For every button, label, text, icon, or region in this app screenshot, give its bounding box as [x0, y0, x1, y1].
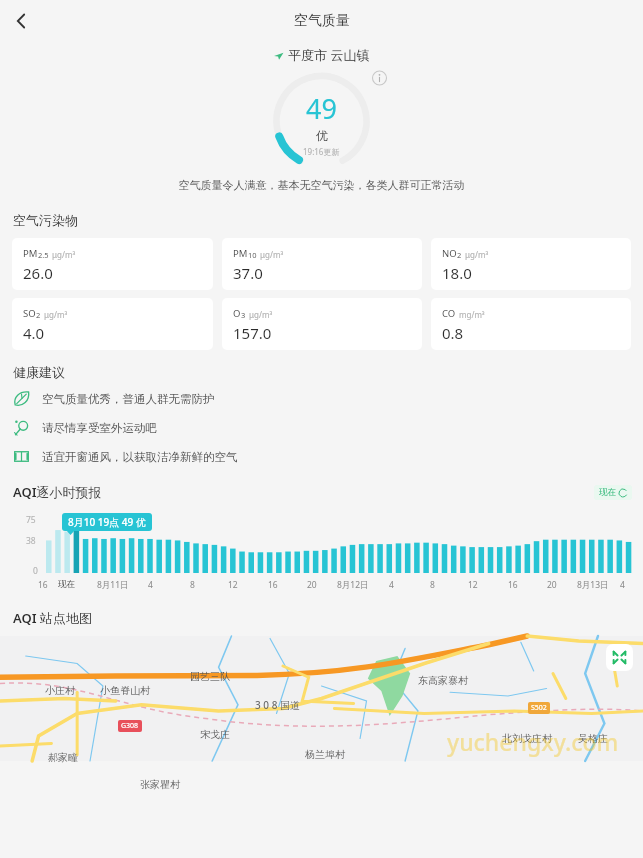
staticText: AQI 站点地图	[13, 609, 92, 627]
staticText: 请尽情享受室外运动吧	[42, 421, 157, 435]
button[interactable]: Back	[4, 4, 38, 38]
staticText: S502	[531, 703, 547, 713]
staticText: 园艺三队	[190, 670, 230, 683]
staticText: 3	[241, 310, 246, 320]
staticText: NO	[442, 247, 457, 260]
staticText: 2	[36, 310, 41, 320]
staticText: 49	[306, 90, 337, 127]
staticText: 20	[547, 579, 557, 591]
staticText: 2.5	[38, 250, 49, 260]
button[interactable]: PM	[12, 238, 213, 290]
staticText: AQI逐小时预报	[13, 483, 102, 501]
staticText: 157.0	[233, 323, 272, 343]
staticText: 张家瞿村	[140, 778, 180, 791]
staticText: 现在	[599, 487, 616, 498]
staticText: 平度市 云山镇	[288, 46, 370, 64]
staticText: 4	[620, 579, 625, 591]
staticText: 18.0	[442, 263, 472, 283]
staticText: 8月10 19点 49 优	[68, 515, 146, 529]
staticText: μg/m³	[52, 249, 76, 260]
button[interactable]: PM	[222, 238, 422, 290]
staticText: PM	[233, 247, 248, 260]
staticText: 空气污染物	[13, 212, 78, 228]
staticText: PM	[23, 247, 38, 260]
staticText: G308	[121, 721, 139, 731]
staticText: 东高家寨村	[418, 674, 468, 687]
staticText: 8月11日	[97, 579, 129, 591]
staticText: 优	[316, 128, 328, 143]
button[interactable]: CO	[431, 298, 631, 350]
staticText: 吴格庄	[578, 732, 608, 745]
staticText: 4	[148, 579, 153, 591]
button[interactable]: SO	[12, 298, 213, 350]
staticText: 8月13日	[577, 579, 609, 591]
staticText: 空气质量令人满意，基本无空气污染，各类人群可正常活动	[0, 178, 643, 192]
staticText: 小庄村	[45, 684, 75, 697]
staticText: O	[233, 307, 241, 320]
staticText: 杨兰埠村	[305, 748, 345, 761]
button[interactable]: 现在	[594, 485, 632, 500]
button[interactable]: 平度市 云山镇	[0, 42, 643, 68]
staticText: 小鱼脊山村	[100, 684, 150, 697]
staticText: 38	[26, 535, 36, 547]
staticText: μg/m³	[260, 249, 284, 260]
staticText: 12	[468, 579, 478, 591]
staticText: 12	[228, 579, 238, 591]
staticText: 8	[430, 579, 435, 591]
staticText: 空气质量	[294, 12, 350, 30]
staticText: 北刘戈庄村	[502, 732, 552, 745]
staticText: CO	[442, 307, 456, 320]
staticText: 16	[38, 579, 48, 591]
staticText: yuchengxy.com	[447, 726, 619, 757]
staticText: μg/m³	[44, 309, 68, 320]
button[interactable]: 空气质量优秀，普通人群无需防护	[0, 390, 643, 407]
staticText: 8	[190, 579, 195, 591]
staticText: 3 0 8 国道	[255, 698, 300, 712]
staticText: 26.0	[23, 263, 53, 283]
staticText: μg/m³	[249, 309, 273, 320]
staticText: 10	[248, 250, 257, 260]
staticText: SO	[23, 307, 36, 320]
staticText: 20	[307, 579, 317, 591]
staticText: 宋戈庄	[200, 728, 230, 741]
button[interactable]: 请尽情享受室外运动吧	[0, 419, 643, 436]
button[interactable]: 适宜开窗通风，以获取洁净新鲜的空气	[0, 448, 643, 465]
staticText: 4	[389, 579, 394, 591]
staticText: 郝家疃	[48, 751, 78, 764]
staticText: 0	[33, 565, 38, 577]
staticText: 0.8	[442, 323, 464, 343]
button[interactable]: Expand map	[606, 644, 633, 671]
staticText: μg/m³	[465, 249, 489, 260]
staticText: 37.0	[233, 263, 263, 283]
button[interactable]: 小庄村	[0, 636, 643, 761]
staticText: 健康建议	[13, 364, 65, 380]
staticText: 适宜开窗通风，以获取洁净新鲜的空气	[42, 450, 238, 464]
staticText: 19:16更新	[303, 146, 340, 157]
staticText: 8月12日	[337, 579, 369, 591]
staticText: 4.0	[23, 323, 45, 343]
button[interactable]: NO	[431, 238, 631, 290]
staticText: 2	[457, 250, 462, 260]
staticText: 75	[26, 514, 36, 526]
staticText: 16	[508, 579, 518, 591]
button[interactable]: O	[222, 298, 422, 350]
staticText: 空气质量优秀，普通人群无需防护	[42, 392, 215, 406]
staticText: mg/m³	[459, 309, 485, 320]
staticText: 现在	[58, 579, 75, 590]
staticText: 16	[268, 579, 278, 591]
